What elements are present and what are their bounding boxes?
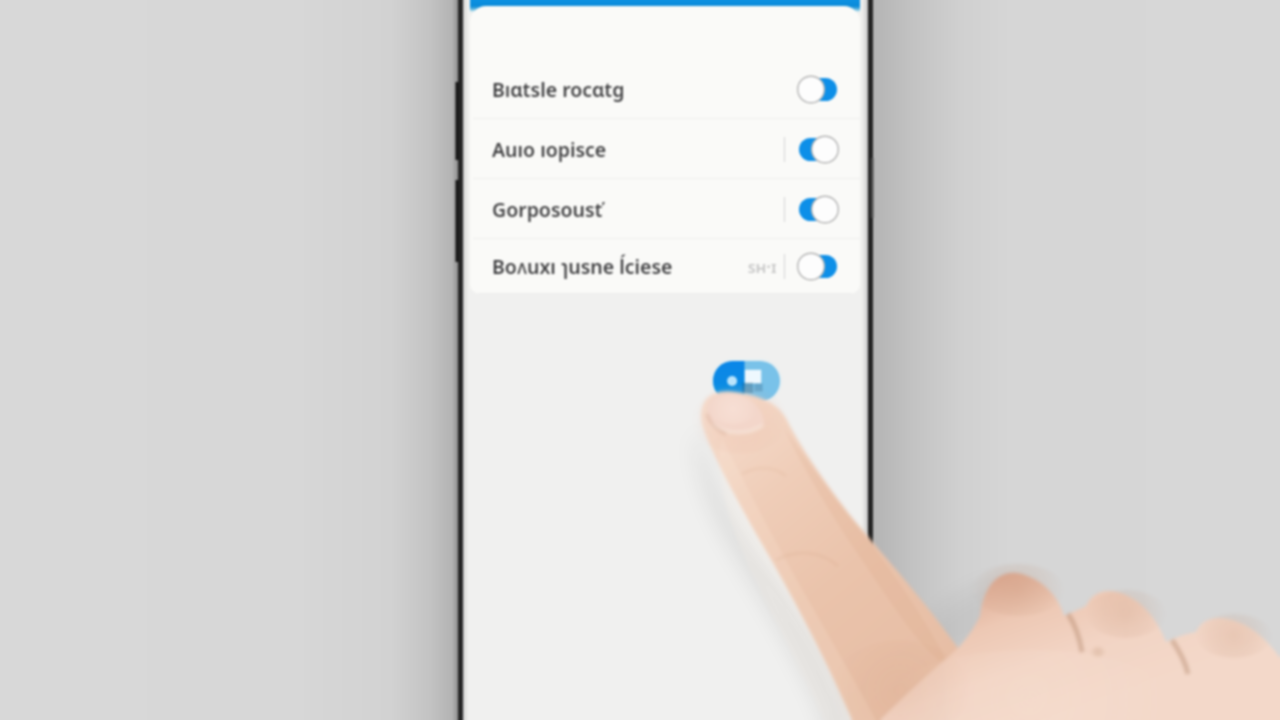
staticText: Auıo ıopisce [492,136,607,163]
button[interactable]: Switch [798,197,838,222]
button[interactable]: Switch [798,77,838,102]
button[interactable]: Toggle button [713,361,780,401]
button[interactable]: Gorposousť [470,179,860,239]
staticText: Bıɑtsle rocɑtɡ [492,76,625,103]
staticText: ꜱʜ·ɪ [748,255,777,278]
staticText: Boᴧuxı ɿusne ĺciese [492,253,673,280]
button[interactable]: Bıɑtsle rocɑtɡ [470,59,860,119]
button[interactable]: Switch [798,254,838,279]
button[interactable]: Auıo ıopisce [470,119,860,179]
button[interactable]: Boᴧuxı ɿusne ĺciese [470,239,860,294]
staticText: Gorposousť [492,196,603,223]
button[interactable]: Switch [798,137,838,162]
